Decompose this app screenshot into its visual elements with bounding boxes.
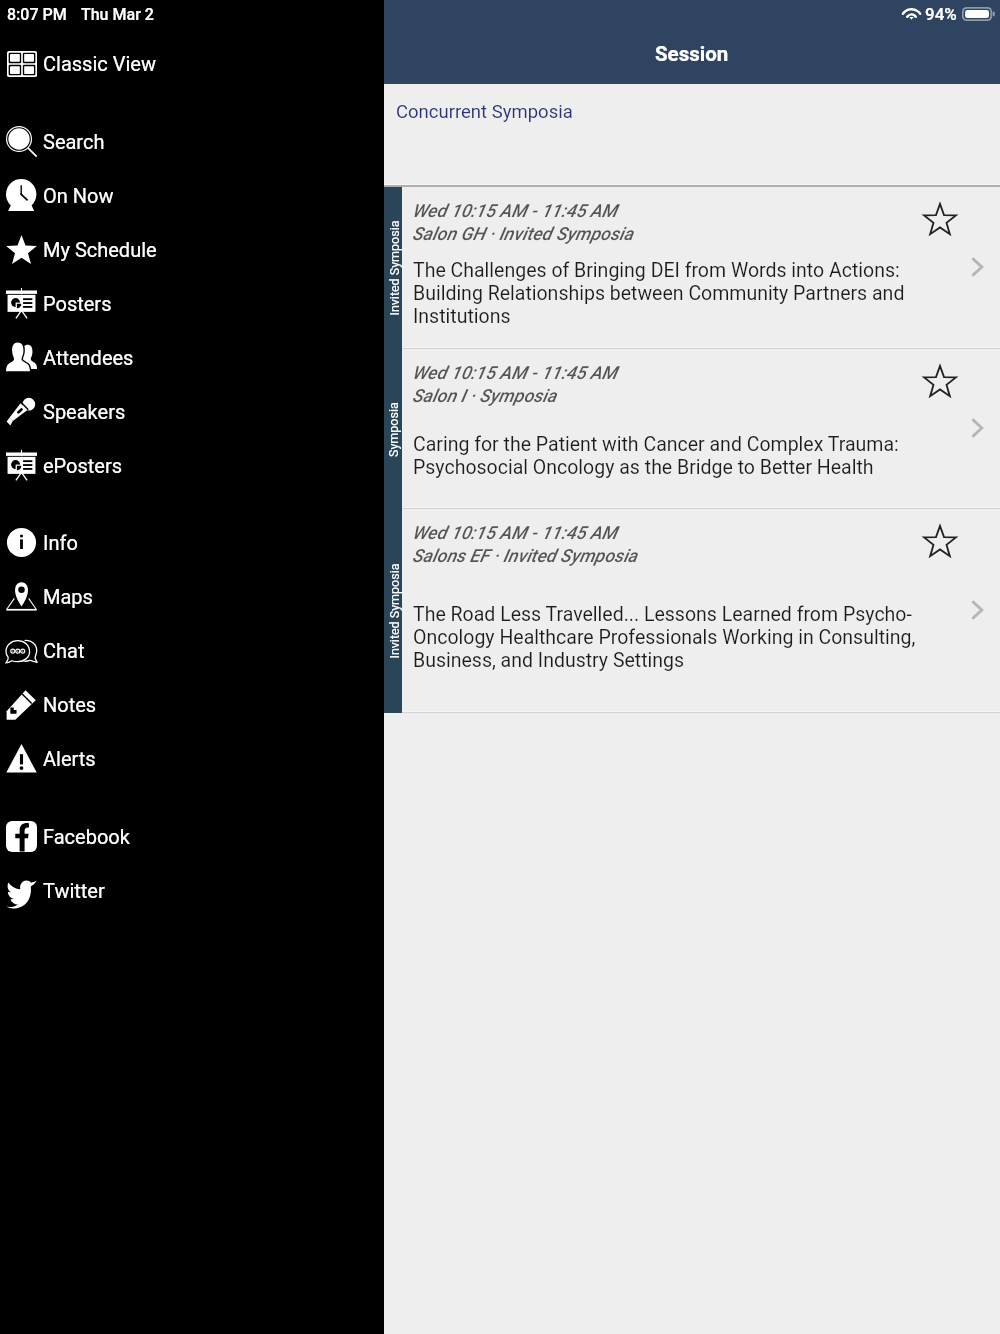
button[interactable]: Invited Symposia xyxy=(384,509,1000,713)
button[interactable]: Speakers xyxy=(0,384,384,438)
button[interactable]: My Schedule xyxy=(0,222,384,276)
button[interactable]: Facebook xyxy=(0,809,384,863)
staticText: Alerts xyxy=(43,747,96,770)
staticText: Posters xyxy=(43,292,112,315)
button[interactable]: Add to favourites xyxy=(920,199,960,239)
staticText: Salon I · Symposia xyxy=(412,385,557,406)
staticText: Info xyxy=(43,531,78,554)
staticText: ePosters xyxy=(43,454,123,477)
staticText: Session xyxy=(655,42,729,66)
button[interactable]: Open session details xyxy=(960,250,994,284)
button[interactable]: ePosters xyxy=(0,438,384,492)
staticText: Caring for the Patient with Cancer and C… xyxy=(413,433,929,479)
staticText: Chat xyxy=(43,639,85,662)
staticText: On Now xyxy=(43,184,114,207)
staticText: 8:07 PM xyxy=(7,5,67,24)
staticText: Wed 10:15 AM - 11:45 AM xyxy=(412,200,617,221)
staticText: Symposia xyxy=(386,402,401,457)
staticText: Invited Symposia xyxy=(386,562,401,658)
button[interactable]: Add to favourites xyxy=(920,521,960,561)
staticText: Twitter xyxy=(43,879,105,902)
staticText: Speakers xyxy=(43,400,126,423)
button[interactable]: Concurrent Symposia xyxy=(384,84,1000,184)
button[interactable]: Twitter xyxy=(0,863,384,917)
staticText: Wed 10:15 AM - 11:45 AM xyxy=(412,362,617,383)
staticText: The Challenges of Bringing DEI from Word… xyxy=(413,259,929,328)
button[interactable]: Open session details xyxy=(960,411,994,445)
staticText: Wed 10:15 AM - 11:45 AM xyxy=(412,522,617,543)
button[interactable]: Maps xyxy=(0,569,384,623)
staticText: Facebook xyxy=(43,825,130,848)
staticText: Salons EF · Invited Symposia xyxy=(412,545,638,566)
button[interactable]: Classic View xyxy=(0,36,384,90)
staticText: Salon GH · Invited Symposia xyxy=(412,223,633,244)
staticText: Thu Mar 2 xyxy=(81,5,154,24)
button[interactable]: On Now xyxy=(0,168,384,222)
staticText: Notes xyxy=(43,693,97,716)
button[interactable]: Notes xyxy=(0,677,384,731)
staticText: Search xyxy=(43,130,105,153)
button[interactable]: Chat xyxy=(0,623,384,677)
button[interactable]: Attendees xyxy=(0,330,384,384)
button[interactable]: Info xyxy=(0,515,384,569)
staticText: Classic View xyxy=(43,52,156,75)
staticText: Maps xyxy=(43,585,93,608)
button[interactable]: Symposia xyxy=(384,349,1000,509)
staticText: Attendees xyxy=(43,346,134,369)
staticText: The Road Less Travelled... Lessons Learn… xyxy=(413,603,929,672)
staticText: My Schedule xyxy=(43,238,157,261)
staticText: Concurrent Symposia xyxy=(396,101,573,123)
staticText: 94% xyxy=(925,4,957,24)
button[interactable]: Search xyxy=(0,114,384,168)
button[interactable]: Add to favourites xyxy=(920,361,960,401)
button[interactable]: Open session details xyxy=(960,593,994,627)
button[interactable]: Alerts xyxy=(0,731,384,785)
button[interactable]: Invited Symposia xyxy=(384,187,1000,349)
button[interactable]: Posters xyxy=(0,276,384,330)
staticText: Invited Symposia xyxy=(386,219,401,315)
